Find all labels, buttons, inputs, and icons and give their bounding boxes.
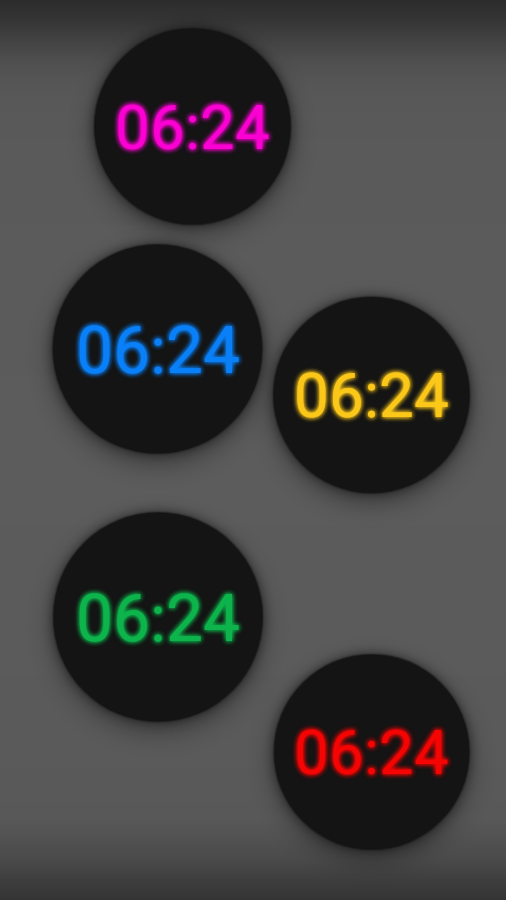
button[interactable]: Clock 06:24 (273, 654, 470, 851)
button[interactable]: Clock 06:24 (273, 296, 471, 494)
button[interactable]: Clock 06:24 (94, 28, 292, 226)
button[interactable]: Clock 06:24 (52, 244, 263, 455)
button[interactable]: Clock 06:24 (53, 512, 264, 723)
